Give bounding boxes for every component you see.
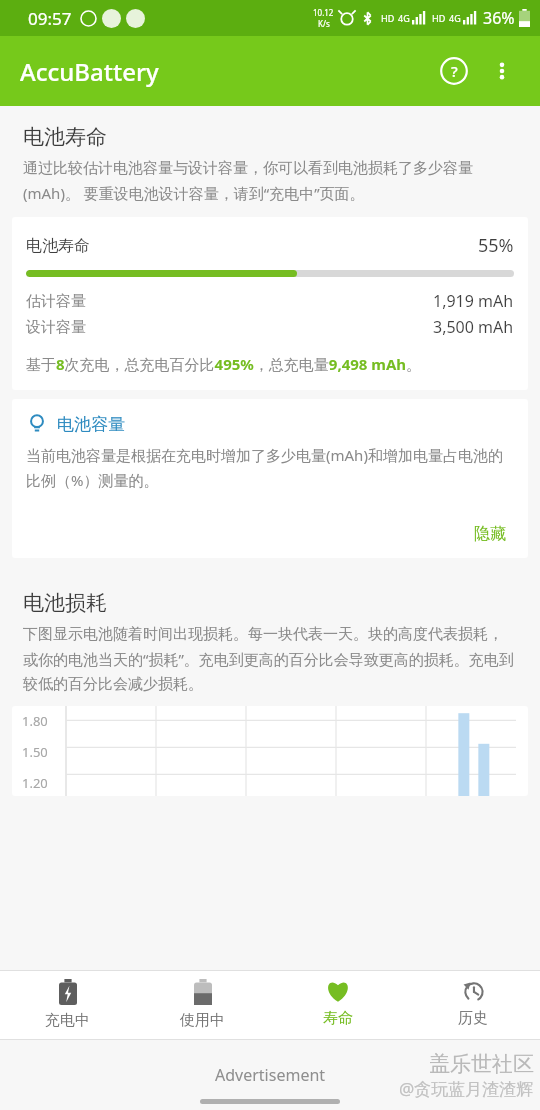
button[interactable]: 电池寿命: [12, 217, 528, 390]
staticText: 电池损耗: [23, 590, 107, 616]
staticText: 55%: [478, 233, 514, 258]
button[interactable]: 寿命: [270, 971, 405, 1039]
staticText: 估计容量: [26, 292, 86, 311]
button[interactable]: 充电中: [0, 971, 135, 1039]
button[interactable]: More options: [478, 47, 526, 95]
button[interactable]: 隐藏: [466, 520, 514, 548]
button[interactable]: 使用中: [135, 971, 270, 1039]
staticText: 4G: [398, 12, 410, 24]
staticText: 历史: [458, 1009, 488, 1028]
staticText: 电池寿命: [26, 236, 90, 256]
staticText: 1.20: [22, 774, 48, 792]
staticText: 当前电池容量是根据在充电时增加了多少电量(mAh)和增加电量占电池的比例（%）测…: [26, 445, 514, 490]
staticText: 36%: [483, 7, 515, 29]
staticText: 隐藏: [474, 524, 506, 544]
staticText: 10.12: [313, 7, 334, 18]
staticText: 充电中: [45, 1011, 90, 1030]
staticText: 盖乐世社区: [429, 1051, 534, 1077]
staticText: HD: [432, 12, 446, 24]
staticText: 基于8次充电，总充电百分比495%，总充电量9,498 mAh。: [26, 354, 422, 374]
staticText: HD: [381, 12, 395, 24]
staticText: 通过比较估计电池容量与设计容量，你可以看到电池损耗了多少容量(mAh)。 要重设…: [23, 159, 517, 203]
staticText: 1.80: [22, 712, 48, 730]
staticText: Advertisement: [215, 1064, 326, 1086]
button[interactable]: Help: [430, 47, 478, 95]
staticText: 4G: [449, 12, 461, 24]
staticText: ?: [451, 61, 458, 81]
staticText: 1,919 mAh: [433, 290, 514, 312]
staticText: 使用中: [180, 1011, 225, 1030]
staticText: 3,500 mAh: [433, 316, 514, 338]
staticText: 设计容量: [26, 318, 86, 337]
staticText: AccuBattery: [20, 55, 159, 88]
staticText: @贪玩蓝月渣渣辉: [399, 1077, 534, 1100]
staticText: 下图显示电池随着时间出现损耗。每一块代表一天。块的高度代表损耗，或你的电池当天的…: [23, 625, 517, 693]
staticText: 1.50: [22, 743, 48, 761]
staticText: 电池容量: [57, 414, 125, 435]
staticText: K/s: [318, 18, 330, 29]
staticText: 电池寿命: [23, 124, 107, 150]
staticText: 09:57: [28, 7, 72, 30]
staticText: 寿命: [323, 1009, 353, 1028]
button[interactable]: 历史: [405, 971, 540, 1039]
button[interactable]: 1.80: [12, 706, 528, 796]
